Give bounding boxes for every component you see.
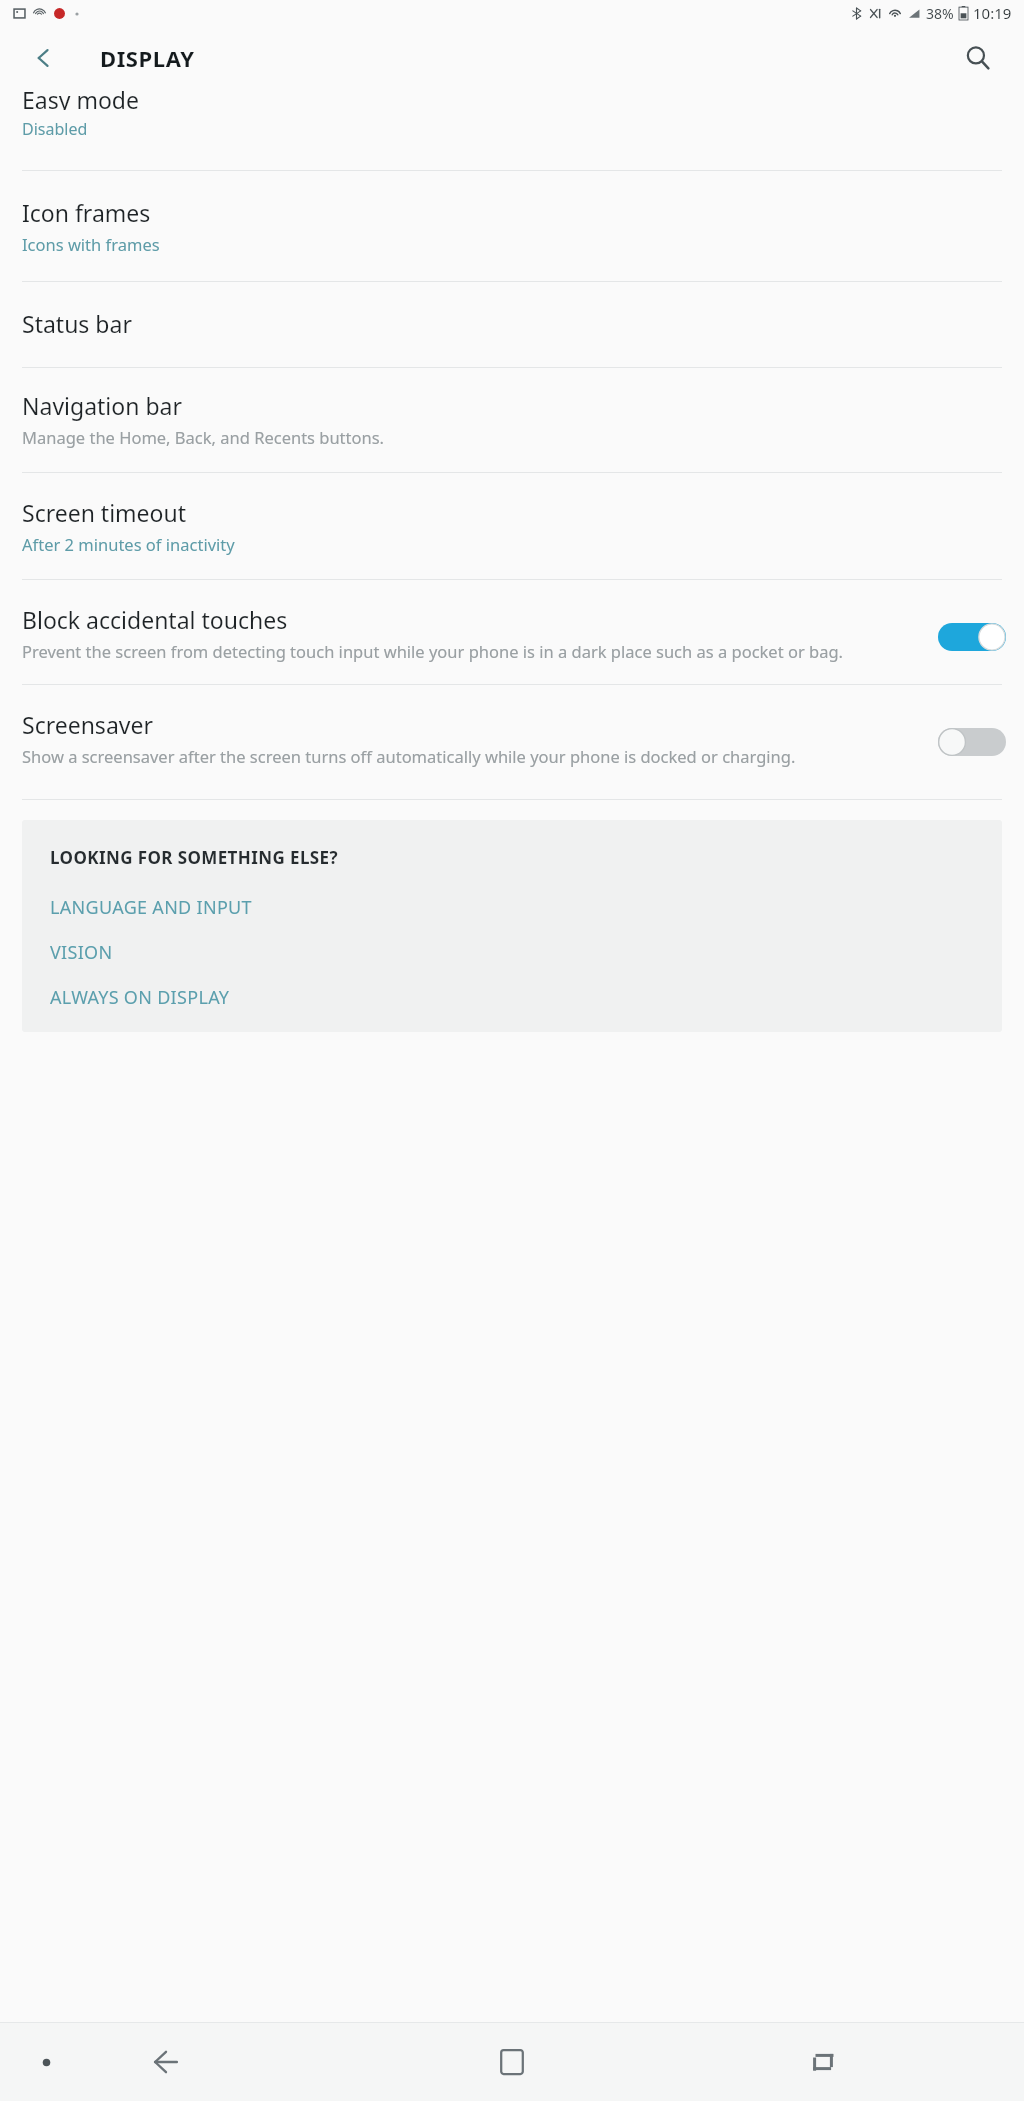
staticText: Icon frames: [22, 197, 151, 228]
staticText: ALWAYS ON DISPLAY: [50, 985, 230, 1010]
staticText: 10:19: [973, 3, 1012, 23]
staticText: Disabled: [22, 118, 88, 140]
button[interactable]: Status bar: [0, 282, 1024, 367]
staticText: Screen timeout: [22, 497, 186, 528]
button[interactable]: Back: [135, 2031, 197, 2093]
button[interactable]: Easy mode: [0, 90, 1024, 142]
button[interactable]: Icon frames: [0, 171, 1024, 281]
staticText: Navigation bar: [22, 390, 182, 421]
button[interactable]: LANGUAGE AND INPUT: [50, 895, 982, 920]
button[interactable]: Toggle off: [938, 723, 1006, 761]
button[interactable]: VISION: [50, 940, 982, 965]
button[interactable]: Navigation bar: [0, 368, 1024, 472]
staticText: Icons with frames: [22, 233, 160, 255]
button[interactable]: Toggle on: [938, 618, 1006, 656]
staticText: 38%: [926, 4, 954, 23]
button[interactable]: Screensaver: [0, 685, 1024, 789]
staticText: Prevent the screen from detecting touch …: [22, 640, 843, 662]
button[interactable]: Back: [24, 38, 64, 78]
staticText: After 2 minutes of inactivity: [22, 533, 235, 555]
staticText: LANGUAGE AND INPUT: [50, 895, 252, 920]
staticText: VISION: [50, 940, 113, 965]
staticText: Screensaver: [22, 709, 153, 740]
staticText: Block accidental touches: [22, 604, 288, 635]
staticText: Easy mode: [22, 84, 139, 110]
staticText: DISPLAY: [100, 43, 195, 73]
button[interactable]: Menu indicator: [28, 2044, 64, 2080]
staticText: Status bar: [22, 308, 132, 339]
button[interactable]: Recents: [792, 2031, 854, 2093]
staticText: LOOKING FOR SOMETHING ELSE?: [50, 846, 339, 869]
button[interactable]: Home: [481, 2031, 543, 2093]
staticText: Show a screensaver after the screen turn…: [22, 745, 796, 767]
button[interactable]: Search: [956, 36, 1000, 80]
button[interactable]: ALWAYS ON DISPLAY: [50, 985, 982, 1010]
staticText: Manage the Home, Back, and Recents butto…: [22, 426, 385, 448]
button[interactable]: Screen timeout: [0, 473, 1024, 579]
button[interactable]: Block accidental touches: [0, 580, 1024, 684]
